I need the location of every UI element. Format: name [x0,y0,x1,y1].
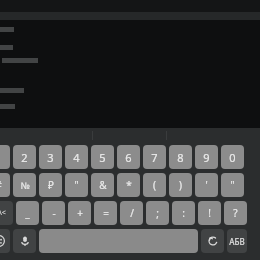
button[interactable]: =\< [0,201,13,225]
staticText: ' [205,178,208,192]
staticText: " [74,178,79,192]
staticText: ) [179,178,182,192]
button[interactable]: = [94,201,117,225]
staticText: 0 [229,150,236,165]
button[interactable]: 2 [13,145,36,169]
staticText: # [0,178,2,192]
button[interactable]: 0 [221,145,244,169]
button[interactable]: АБВ [227,229,247,253]
button[interactable]: & [91,173,114,197]
staticText: ( [153,178,156,192]
button[interactable]: # [0,173,10,197]
staticText: : [182,206,185,220]
button[interactable]: ₽ [39,173,62,197]
button[interactable]: ) [169,173,192,197]
staticText: * [126,178,132,192]
button[interactable]: * [117,173,140,197]
staticText: ? [233,206,238,220]
button[interactable]: 9 [195,145,218,169]
staticText: " [230,178,235,192]
button[interactable]: ? [224,201,247,225]
staticText: ! [208,206,211,220]
staticText: _ [25,206,30,220]
button[interactable]: " [221,173,244,197]
staticText: / [130,206,134,220]
staticText: 7 [151,150,158,165]
button[interactable]: 8 [169,145,192,169]
staticText: 3 [47,150,54,165]
staticText: = [103,206,109,220]
staticText: 9 [203,150,210,165]
button[interactable]: ( [143,173,166,197]
staticText: АБВ [229,236,245,247]
button[interactable]: - [42,201,65,225]
button[interactable]: " [65,173,88,197]
button[interactable]: 3 [39,145,62,169]
button[interactable]: 4 [65,145,88,169]
button[interactable]: + [68,201,91,225]
staticText: & [99,178,107,192]
staticText: =\< [0,208,6,218]
button[interactable]: Voice input [13,229,36,253]
button[interactable]: 1 [0,145,10,169]
staticText: 2 [21,150,28,165]
staticText: 6 [125,150,132,165]
staticText: 5 [99,150,106,165]
button[interactable]: ; [146,201,169,225]
button[interactable]: / [120,201,143,225]
button[interactable]: _ [16,201,39,225]
button[interactable]: Undo [201,229,224,253]
button[interactable]: ' [195,173,218,197]
staticText: - [52,206,56,220]
button[interactable]: № [13,173,36,197]
button[interactable]: : [172,201,195,225]
button[interactable]: ! [198,201,221,225]
button[interactable]: 6 [117,145,140,169]
button[interactable]: Space [39,229,198,253]
staticText: № [20,179,30,191]
button[interactable]: 7 [143,145,166,169]
staticText: 8 [177,150,184,165]
button[interactable]: 5 [91,145,114,169]
staticText: + [77,206,83,220]
button[interactable]: Emoji [0,229,10,253]
staticText: 4 [73,150,80,165]
staticText: ; [156,206,159,220]
staticText: ₽ [48,178,54,192]
